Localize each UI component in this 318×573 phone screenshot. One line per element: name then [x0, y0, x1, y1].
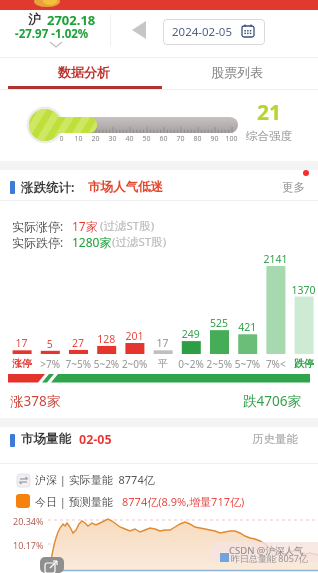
staticText: 历史量能: [252, 432, 298, 446]
staticText: 实际涨停:: [12, 218, 64, 234]
staticText: 市场人气低迷: [88, 179, 163, 195]
staticText: 数据分析: [58, 64, 110, 80]
staticText: 实际跌停:: [12, 234, 64, 250]
staticText: -27.97 -1.02%: [15, 26, 89, 42]
staticText: 今日 | 预测量能: [35, 494, 113, 509]
staticText: 2702.18: [47, 11, 96, 29]
staticText: 1280家: [72, 234, 112, 250]
staticText: (过滤ST股): [112, 234, 167, 250]
staticText: 2024-02-05: [172, 24, 233, 40]
staticText: 跌4706家: [243, 392, 301, 410]
staticText: 10.17%: [13, 539, 44, 551]
staticText: 沪深 | 实际量能 8774亿: [35, 472, 155, 487]
staticText: 8774亿(8.9%,增量717亿): [122, 494, 245, 509]
staticText: 沪: [28, 11, 41, 27]
staticText: 02-05: [79, 431, 112, 448]
staticText: 综合强度: [246, 129, 292, 143]
staticText: 市场量能: [21, 431, 71, 447]
staticText: 20.34%: [13, 515, 44, 527]
staticText: 更多: [282, 180, 305, 194]
staticText: 21: [257, 98, 282, 127]
staticText: (过滤ST股): [100, 218, 155, 234]
staticText: CSDN @沪深人气: [229, 544, 304, 557]
staticText: 17家: [72, 218, 98, 234]
staticText: 涨378家: [10, 392, 61, 410]
staticText: 股票列表: [211, 64, 263, 80]
staticText: 昨日总量能 8057亿: [231, 552, 308, 564]
staticText: 涨跌统计:: [21, 179, 75, 196]
